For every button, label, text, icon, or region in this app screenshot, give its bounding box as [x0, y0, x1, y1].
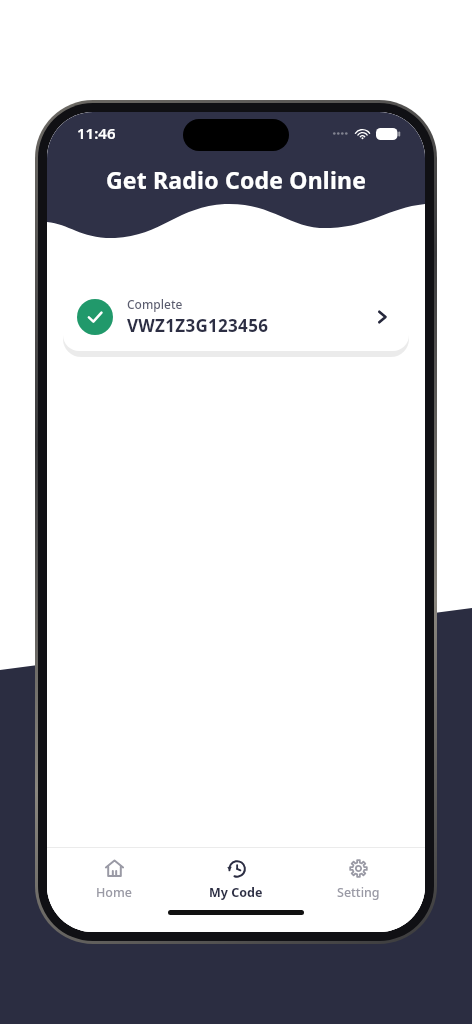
button[interactable]: Setting: [303, 854, 413, 905]
staticText: Home: [96, 884, 133, 901]
staticText: Complete: [127, 296, 183, 312]
button[interactable]: Open code details: [369, 304, 395, 330]
button[interactable]: My Code: [181, 854, 291, 905]
staticText: 11:46: [77, 123, 116, 143]
staticText: Setting: [337, 884, 380, 901]
staticText: Get Radio Code Online: [47, 164, 425, 195]
staticText: My Code: [209, 884, 263, 901]
button[interactable]: Home: [59, 854, 169, 905]
staticText: VWZ1Z3G123456: [127, 314, 269, 337]
button[interactable]: Complete: [63, 282, 409, 351]
